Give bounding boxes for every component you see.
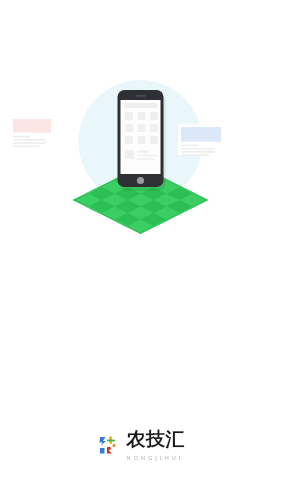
staticText: 农技汇 <box>126 428 185 452</box>
button[interactable]: App logo mark <box>96 428 185 461</box>
staticText: N O N G J I H U I <box>126 454 182 461</box>
other: App logo mark <box>96 433 120 457</box>
